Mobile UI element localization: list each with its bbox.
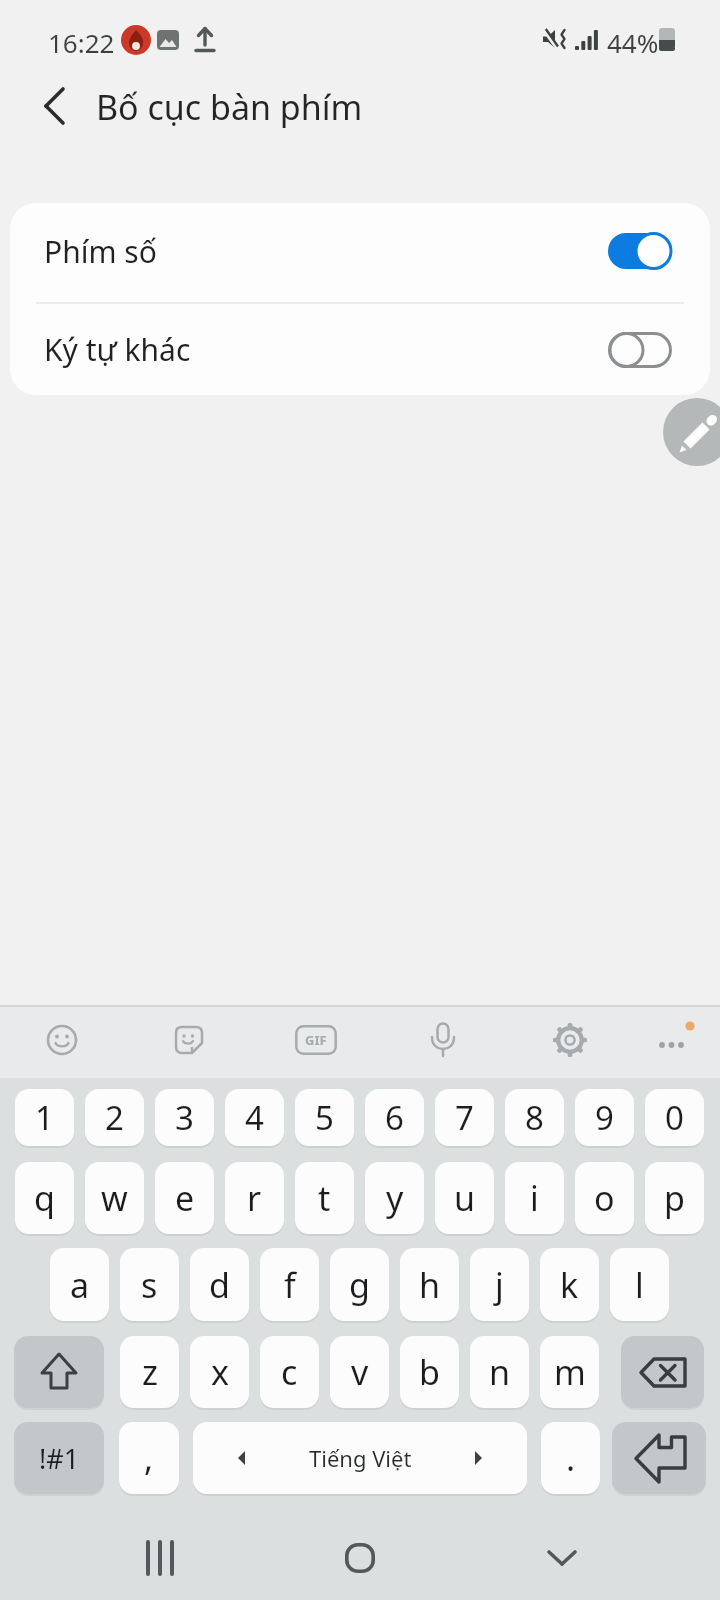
button[interactable] <box>413 1010 473 1070</box>
button[interactable]: 2 <box>85 1089 144 1146</box>
staticText: 16:22 <box>48 25 115 60</box>
button[interactable]: 9 <box>575 1089 634 1146</box>
staticText: p <box>664 1175 685 1221</box>
staticText: . <box>566 1435 576 1481</box>
staticText: f <box>284 1262 296 1308</box>
button[interactable] <box>663 398 720 466</box>
button[interactable]: , <box>119 1422 179 1494</box>
button[interactable] <box>30 80 80 132</box>
button[interactable]: v <box>330 1336 389 1408</box>
staticText: z <box>142 1349 158 1395</box>
button[interactable]: z <box>120 1336 179 1408</box>
button[interactable] <box>621 1336 704 1408</box>
staticText: d <box>209 1262 230 1308</box>
staticText: 2 <box>105 1095 124 1140</box>
staticText: j <box>495 1262 504 1308</box>
staticText: 44% <box>607 25 659 60</box>
button[interactable]: n <box>470 1336 529 1408</box>
button[interactable]: q <box>15 1162 74 1234</box>
staticText: 3 <box>175 1095 194 1140</box>
staticText: v <box>351 1349 369 1395</box>
button[interactable]: 3 <box>155 1089 214 1146</box>
button[interactable]: s <box>120 1248 179 1321</box>
button[interactable]: m <box>540 1336 599 1408</box>
button[interactable]: 7 <box>435 1089 494 1146</box>
staticText: Tiếng Việt <box>309 1443 412 1473</box>
staticText: GIF <box>305 1031 327 1049</box>
button[interactable]: 1 <box>15 1089 74 1146</box>
button[interactable]: 0 <box>645 1089 704 1146</box>
button[interactable] <box>14 1336 104 1408</box>
staticText: e <box>175 1175 195 1221</box>
staticText: b <box>419 1349 440 1395</box>
button[interactable]: t <box>295 1162 354 1234</box>
button[interactable]: !#1 <box>14 1422 104 1494</box>
staticText: a <box>70 1262 90 1308</box>
staticText: 0 <box>665 1095 684 1140</box>
staticText: q <box>34 1175 55 1221</box>
staticText: Phím số <box>44 231 157 272</box>
button[interactable]: . <box>541 1422 600 1494</box>
button[interactable]: 6 <box>365 1089 424 1146</box>
staticText: Bố cục bàn phím <box>96 84 363 130</box>
button[interactable]: i <box>505 1162 564 1234</box>
staticText: k <box>560 1262 579 1308</box>
button[interactable] <box>646 1010 706 1070</box>
staticText: 8 <box>525 1095 544 1140</box>
staticText: 1 <box>35 1095 54 1140</box>
button[interactable] <box>320 1518 400 1598</box>
button[interactable]: Ký tự khác <box>10 304 710 395</box>
button[interactable]: e <box>155 1162 214 1234</box>
button[interactable]: l <box>610 1248 669 1321</box>
staticText: i <box>530 1175 539 1221</box>
staticText: 7 <box>455 1095 474 1140</box>
button[interactable]: GIF <box>286 1010 346 1070</box>
button[interactable]: Tiếng Việt <box>193 1422 527 1494</box>
staticText: h <box>419 1262 441 1308</box>
button[interactable]: 8 <box>505 1089 564 1146</box>
button[interactable]: f <box>260 1248 319 1321</box>
button[interactable]: u <box>435 1162 494 1234</box>
button[interactable]: y <box>365 1162 424 1234</box>
button[interactable] <box>540 1010 600 1070</box>
staticText: , <box>144 1435 154 1481</box>
staticText: 5 <box>315 1095 334 1140</box>
staticText: n <box>489 1349 511 1395</box>
button[interactable]: d <box>190 1248 249 1321</box>
button[interactable]: a <box>50 1248 109 1321</box>
staticText: y <box>386 1175 404 1221</box>
staticText: 6 <box>385 1095 404 1140</box>
staticText: 9 <box>595 1095 614 1140</box>
staticText: !#1 <box>39 1440 80 1477</box>
staticText: 4 <box>245 1095 264 1140</box>
button[interactable]: h <box>400 1248 459 1321</box>
staticText: w <box>101 1175 128 1221</box>
button[interactable] <box>522 1518 602 1598</box>
staticText: l <box>635 1262 644 1308</box>
staticText: s <box>141 1262 158 1308</box>
button[interactable]: j <box>470 1248 529 1321</box>
button[interactable]: Phím số <box>10 203 710 299</box>
button[interactable]: k <box>540 1248 599 1321</box>
button[interactable]: r <box>225 1162 284 1234</box>
button[interactable]: p <box>645 1162 704 1234</box>
button[interactable] <box>159 1010 219 1070</box>
button[interactable]: g <box>330 1248 389 1321</box>
button[interactable] <box>32 1010 92 1070</box>
button[interactable]: x <box>190 1336 249 1408</box>
staticText: c <box>281 1349 298 1395</box>
button[interactable]: o <box>575 1162 634 1234</box>
button[interactable] <box>612 1422 706 1494</box>
button[interactable]: 5 <box>295 1089 354 1146</box>
staticText: x <box>211 1349 229 1395</box>
button[interactable]: w <box>85 1162 144 1234</box>
staticText: t <box>318 1175 331 1221</box>
button[interactable] <box>120 1518 200 1598</box>
staticText: o <box>594 1175 615 1221</box>
button[interactable]: b <box>400 1336 459 1408</box>
button[interactable]: 4 <box>225 1089 284 1146</box>
staticText: Ký tự khác <box>44 329 191 370</box>
staticText: r <box>247 1175 262 1221</box>
button[interactable]: c <box>260 1336 319 1408</box>
staticText: m <box>554 1349 586 1395</box>
